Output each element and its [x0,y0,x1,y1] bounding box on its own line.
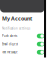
staticText: My Account [2,15,32,22]
staticText: Push alerts [2,34,17,38]
staticText: Text message [2,50,18,54]
staticText: Email digest [2,42,18,46]
staticText: Notification settings [2,27,30,30]
